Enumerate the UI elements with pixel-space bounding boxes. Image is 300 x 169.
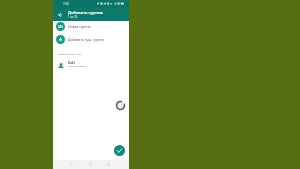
button[interactable]: Dubl — [53, 58, 129, 71]
staticText: Новая группа — [68, 24, 91, 29]
staticText: Добавить сущ. группу — [68, 37, 105, 42]
button[interactable]: Confirm selection — [114, 145, 125, 156]
staticText: 1 из 25 — [68, 15, 78, 19]
button[interactable]: Home — [83, 160, 97, 169]
button[interactable]: Back — [55, 10, 65, 20]
button[interactable]: Recent apps — [101, 160, 115, 169]
button[interactable]: Добавить сущ. группу — [53, 33, 129, 46]
staticText: Группы в ваших чатах — [58, 53, 82, 56]
staticText: Dubl — [68, 61, 75, 65]
staticText: Группа обновлена — [68, 65, 87, 68]
staticText: 7:45 — [63, 2, 69, 6]
staticText: Добавить группы — [68, 10, 104, 16]
button[interactable]: Новая группа — [53, 20, 129, 33]
